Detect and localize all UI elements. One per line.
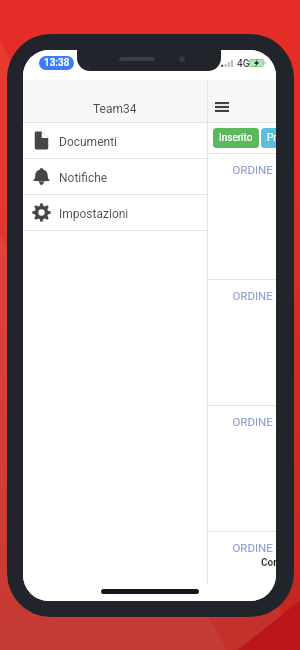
staticText: Documenti	[59, 135, 117, 149]
staticText: ORDINE 0003	[232, 415, 276, 428]
button[interactable]: Notifiche	[23, 159, 207, 195]
button[interactable]: Inserito	[213, 128, 259, 148]
button[interactable]: ORDINE 0003	[208, 405, 276, 531]
staticText: Notifiche	[59, 171, 108, 185]
button[interactable]: ORDINE 0001	[208, 153, 276, 279]
staticText: 4G	[237, 58, 250, 70]
button[interactable]: ORDINE 0004	[208, 531, 276, 583]
staticText: ORDINE 0004	[232, 541, 276, 554]
staticText: 13:38	[44, 57, 70, 69]
staticText: Team34	[93, 102, 137, 116]
staticText: Inserito	[219, 132, 253, 144]
staticText: ORDINE 0002	[232, 289, 276, 302]
staticText: Consegnato	[261, 557, 276, 569]
staticText: Impostazioni	[59, 207, 129, 221]
button[interactable]: Documenti	[23, 123, 207, 159]
button[interactable]: Open navigation menu	[211, 98, 233, 116]
button[interactable]: ORDINE 0002	[208, 279, 276, 405]
button[interactable]: Impostazioni	[23, 195, 207, 231]
staticText: ORDINE 0001	[232, 163, 276, 176]
staticText: Prodotto	[267, 132, 276, 144]
button[interactable]: Prodotto	[261, 128, 276, 148]
